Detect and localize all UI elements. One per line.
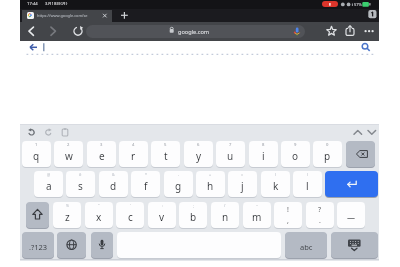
button[interactable]: f xyxy=(131,171,160,197)
staticText: s xyxy=(78,179,83,193)
button[interactable] xyxy=(57,232,86,258)
staticText: 17:44 xyxy=(27,1,38,7)
button[interactable]: a xyxy=(34,171,63,197)
button[interactable]: — xyxy=(337,202,365,228)
staticText: u xyxy=(227,149,234,163)
staticText: = xyxy=(241,172,244,177)
button[interactable]: c xyxy=(116,202,144,228)
staticText: 57% xyxy=(354,2,362,7)
staticText: # xyxy=(79,172,82,177)
button[interactable]: l xyxy=(293,171,322,197)
staticText: 3 xyxy=(100,142,103,148)
staticText: — xyxy=(347,212,355,223)
button[interactable]: ? xyxy=(306,202,334,228)
staticText: 2 xyxy=(67,142,70,148)
staticText: y xyxy=(196,149,202,163)
button[interactable]: w xyxy=(54,141,83,167)
button[interactable] xyxy=(325,171,378,197)
button[interactable]: .?123 xyxy=(22,232,54,258)
staticText: j xyxy=(241,179,244,193)
staticText: ~ xyxy=(256,203,259,208)
button[interactable]: b xyxy=(179,202,207,228)
button[interactable]: n xyxy=(211,202,239,228)
staticText: e xyxy=(99,149,105,163)
staticText: 0 xyxy=(326,142,329,148)
staticText: p xyxy=(324,149,331,163)
staticText: n xyxy=(222,210,229,224)
button[interactable]: g xyxy=(164,171,193,197)
button[interactable]: s xyxy=(66,171,95,197)
staticText: 1 xyxy=(35,142,38,148)
staticText: 7 xyxy=(229,142,232,148)
button[interactable]: q xyxy=(22,141,51,167)
staticText: ( xyxy=(275,172,277,177)
button[interactable]: m xyxy=(243,202,271,228)
staticText: 8 xyxy=(262,142,265,148)
staticText: f xyxy=(144,179,148,193)
button[interactable]: y xyxy=(184,141,213,167)
staticText: z xyxy=(65,210,70,224)
staticText: * xyxy=(145,172,147,177)
button[interactable] xyxy=(22,10,112,23)
button[interactable]: u xyxy=(216,141,245,167)
button[interactable] xyxy=(91,232,113,258)
staticText: b xyxy=(190,210,197,224)
staticText: , xyxy=(287,216,289,226)
button[interactable]: ! xyxy=(274,202,302,228)
button[interactable]: k xyxy=(261,171,290,197)
staticText: a xyxy=(46,179,52,193)
staticText: : xyxy=(162,203,163,208)
button[interactable]: j xyxy=(228,171,257,197)
staticText: % xyxy=(66,203,69,208)
staticText: 3月18日(月) xyxy=(45,1,68,7)
button[interactable]: t xyxy=(151,141,180,167)
staticText: o xyxy=(292,149,299,163)
button[interactable]: x xyxy=(85,202,113,228)
staticText: @ xyxy=(47,172,51,177)
staticText: w xyxy=(65,149,73,163)
staticText: abc xyxy=(300,242,313,252)
staticText: m xyxy=(252,210,262,224)
button[interactable]: abc xyxy=(285,232,327,258)
staticText: .?123 xyxy=(29,242,48,252)
staticText: k xyxy=(273,179,279,193)
staticText: 9 xyxy=(294,142,297,148)
button[interactable]: z xyxy=(53,202,81,228)
staticText: ! xyxy=(287,205,289,215)
staticText: v xyxy=(159,210,165,224)
staticText: c xyxy=(128,210,133,224)
staticText: https://www.google.com/se xyxy=(37,13,88,18)
staticText: google.com xyxy=(178,28,210,36)
staticText: ; xyxy=(193,203,194,208)
staticText: l xyxy=(306,179,309,193)
button[interactable] xyxy=(26,202,49,228)
button[interactable] xyxy=(86,25,305,38)
staticText: / xyxy=(224,203,226,208)
staticText: " xyxy=(98,203,100,208)
button[interactable]: d xyxy=(99,171,128,197)
button[interactable]: p xyxy=(313,141,342,167)
button[interactable]: e xyxy=(87,141,116,167)
staticText: r xyxy=(131,149,136,163)
staticText: 5 xyxy=(164,142,167,148)
staticText: i xyxy=(262,149,265,163)
staticText: t xyxy=(164,149,168,163)
staticText: + xyxy=(209,172,212,177)
staticText: - xyxy=(178,172,180,177)
button[interactable] xyxy=(346,141,375,167)
staticText: d xyxy=(110,179,117,193)
button[interactable]: r xyxy=(119,141,148,167)
staticText: 4 xyxy=(132,142,135,148)
button[interactable] xyxy=(331,232,378,258)
staticText: ? xyxy=(318,205,322,215)
staticText: ' xyxy=(130,203,131,208)
staticText: q xyxy=(33,149,40,163)
button[interactable]: v xyxy=(148,202,176,228)
staticText: x xyxy=(96,210,102,224)
button[interactable]: i xyxy=(249,141,278,167)
button[interactable]: o xyxy=(281,141,310,167)
button[interactable]: h xyxy=(196,171,225,197)
staticText: . xyxy=(319,216,321,226)
staticText: 6 xyxy=(197,142,200,148)
